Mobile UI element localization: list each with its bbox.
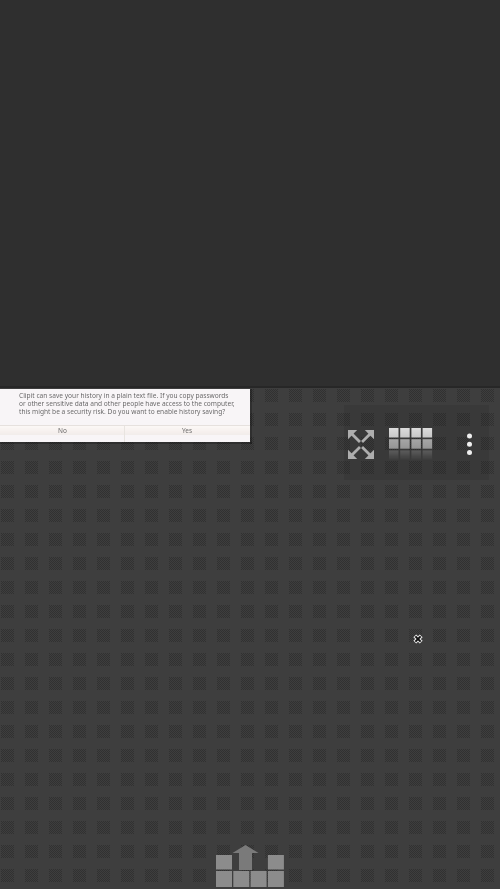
button[interactable]: Grid view [389,428,435,462]
button[interactable]: Yes [125,426,250,435]
button[interactable]: Fullscreen [348,430,374,459]
button[interactable]: Software updater [216,845,286,889]
staticText: Clipit can save your history in a plain … [19,391,236,416]
button[interactable]: More options [457,433,482,457]
button[interactable]: No [0,426,124,435]
staticText: No [58,426,67,435]
staticText: Yes [182,426,193,435]
